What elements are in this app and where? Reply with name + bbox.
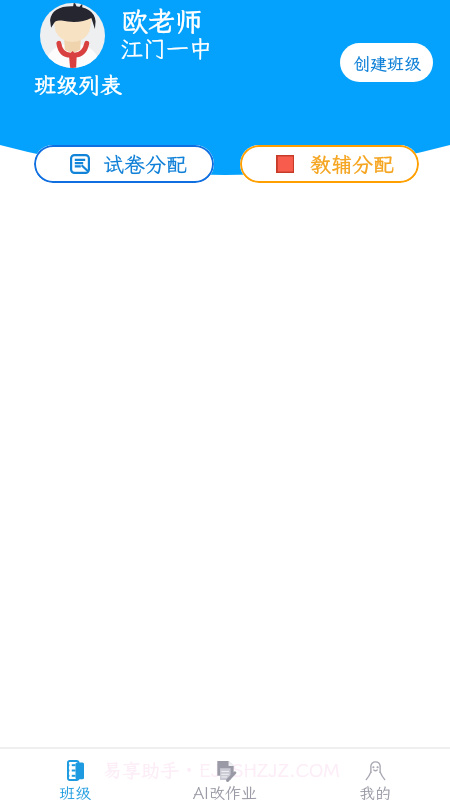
button[interactable]: 我的 [300, 759, 450, 800]
button[interactable]: 班级 [0, 759, 150, 800]
staticText: 江门一中 [120, 33, 212, 63]
button[interactable]: AI改作业 [150, 759, 300, 800]
staticText: AI改作业 [193, 782, 257, 800]
staticText: 欧老师 [121, 3, 202, 39]
staticText: 班级 [59, 782, 92, 800]
staticText: 创建班级 [353, 52, 421, 74]
button[interactable]: 创建班级 [340, 43, 433, 82]
staticText: 易享助手 · EJXSHZJZ.COM [103, 757, 340, 782]
staticText: 班级列表 [34, 70, 123, 99]
button[interactable]: 试卷分配 [34, 145, 214, 183]
button[interactable]: 教辅分配 [240, 145, 419, 183]
staticText: 教辅分配 [310, 150, 394, 178]
staticText: 我的 [359, 782, 392, 800]
staticText: 试卷分配 [103, 150, 187, 178]
